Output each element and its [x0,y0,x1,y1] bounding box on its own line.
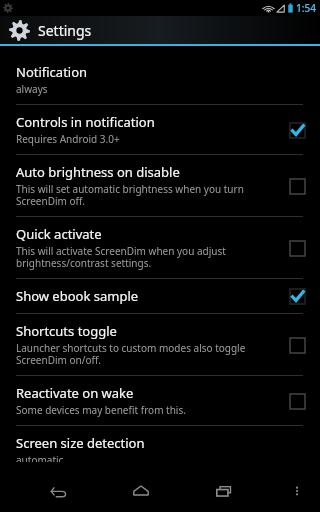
button[interactable]: Auto brightness on disable [288,177,306,195]
staticText: Requires Android 3.0+ [16,132,120,146]
staticText: Settings [38,21,92,40]
staticText: Screen size detection [16,434,145,452]
button[interactable]: Quick activate [288,239,306,257]
button[interactable]: Shortcuts toggle [288,336,306,354]
staticText: This will set automatic brightness when … [16,182,278,208]
button[interactable]: Controls in notification [0,105,320,154]
staticText: This will activate ScreenDim when you ad… [16,244,278,270]
staticText: Reactivate on wake [16,384,134,402]
button[interactable]: Controls in notification [288,121,306,139]
button[interactable]: Auto brightness on disable [0,155,320,216]
staticText: automatic [16,453,64,462]
button[interactable]: Show ebook sample [288,287,306,305]
button[interactable]: Recent apps [202,470,246,512]
staticText: Controls in notification [16,113,155,131]
button[interactable]: Home [119,470,163,512]
staticText: 1:54 [296,1,316,15]
staticText: Notification [16,63,88,81]
button[interactable]: Quick activate [0,217,320,278]
button[interactable]: Reactivate on wake [0,376,320,425]
staticText: Some devices may benefit from this. [16,403,186,417]
button[interactable]: More options [280,474,314,508]
staticText: Launcher shortcuts to custom modes also … [16,341,278,367]
staticText: Quick activate [16,225,102,243]
button[interactable]: Back [36,470,80,512]
button[interactable]: Reactivate on wake [288,392,306,410]
staticText: Auto brightness on disable [16,163,180,181]
button[interactable]: Show ebook sample [0,279,320,313]
button[interactable]: Screen size detection [0,426,320,470]
button[interactable]: Notification [0,55,320,104]
staticText: always [16,82,48,96]
button[interactable]: Shortcuts toggle [0,314,320,375]
staticText: Show ebook sample [16,287,139,305]
staticText: Shortcuts toggle [16,322,117,340]
